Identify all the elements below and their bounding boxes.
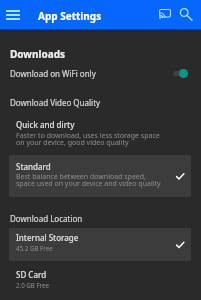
button[interactable]: Open navigation menu — [2, 6, 24, 24]
staticText: Quick and dirty — [16, 119, 75, 130]
staticText: Download on WiFi only — [10, 68, 96, 79]
button[interactable]: Download on WiFi only — [0, 65, 201, 80]
button[interactable]: Cast to device — [155, 6, 175, 24]
staticText: Download Location — [10, 213, 83, 224]
button[interactable]: Internal Storage — [9, 228, 191, 261]
staticText: App Settings — [38, 9, 102, 23]
staticText: Download Video Quality — [10, 97, 101, 108]
staticText: Downloads — [10, 47, 65, 61]
staticText: Faster to download, uses less storage sp… — [16, 131, 160, 148]
staticText: Best balance between download speed, spa… — [16, 172, 161, 189]
button[interactable]: Quick and dirty — [9, 114, 191, 154]
staticText: 45.2 GB Free — [16, 244, 53, 252]
button[interactable]: Standard — [9, 155, 191, 197]
staticText: Standard — [16, 161, 51, 172]
staticText: Internal Storage — [16, 232, 79, 243]
button[interactable]: Search — [176, 5, 196, 25]
button[interactable]: SD Card — [9, 265, 191, 298]
staticText: 2.0 GB Free — [16, 281, 50, 289]
staticText: SD Card — [16, 269, 47, 280]
